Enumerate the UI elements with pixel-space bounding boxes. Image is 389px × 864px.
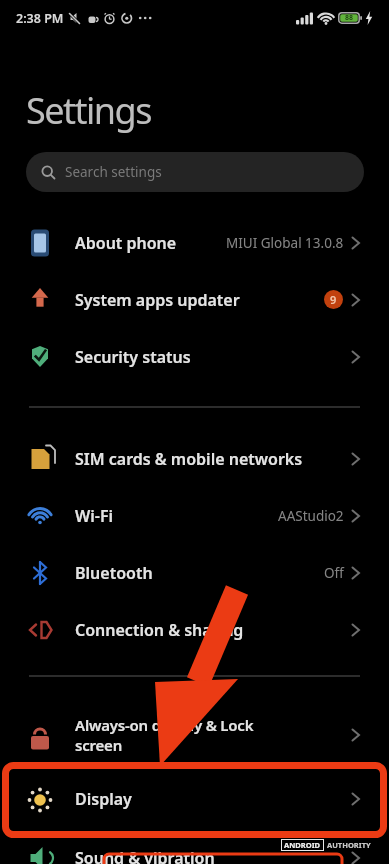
staticText: Settings [26,86,151,135]
button[interactable]: SIM cards & mobile networks [0,430,389,487]
staticText: MIUI Global 13.0.8 [226,234,344,252]
staticText: Connection & sharing [75,619,244,641]
button[interactable]: Always-on display & Lock [0,705,389,765]
staticText: 88 [345,13,354,23]
staticText: Always-on display & Lock [75,715,254,735]
staticText: Display [75,788,132,810]
button[interactable]: Security status [0,328,389,385]
button[interactable]: Bluetooth [0,544,389,601]
staticText: 9 [330,292,337,307]
staticText: ANDROID [284,840,321,850]
staticText: Wi-Fi [75,505,114,527]
staticText: Security status [75,346,191,368]
staticText: About phone [75,232,177,254]
button[interactable]: System apps updater [0,271,389,328]
button[interactable]: Connection & sharing [0,601,389,658]
button[interactable]: Wi-Fi [0,487,389,544]
staticText: AUTHORITY [327,840,371,850]
staticText: AAStudio2 [278,507,344,525]
staticText: Bluetooth [75,562,153,584]
staticText: System apps updater [75,289,240,311]
button[interactable]: About phone [0,214,389,271]
staticText: screen [75,735,123,755]
button[interactable]: Display [0,770,389,827]
button[interactable]: Sound & vibration [0,829,389,864]
staticText: Search settings [65,163,162,181]
button[interactable]: Search settings [26,152,364,192]
staticText: Sound & vibration [75,847,215,864]
staticText: 2:38 PM [16,10,64,27]
staticText: SIM cards & mobile networks [75,448,303,470]
staticText: Off [324,564,344,582]
